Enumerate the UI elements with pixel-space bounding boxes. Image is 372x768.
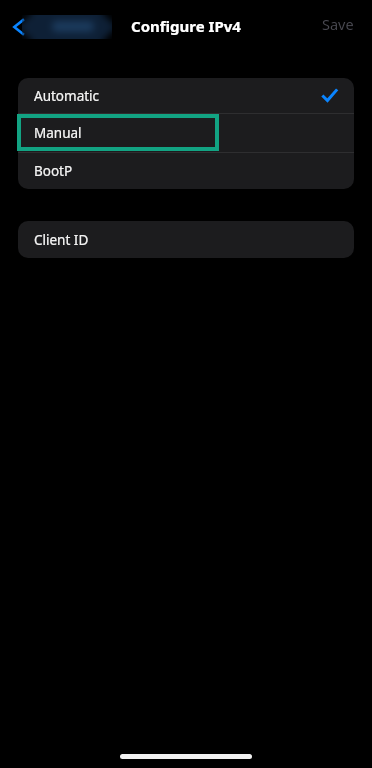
button[interactable]: BootP	[18, 153, 354, 189]
staticText: Automatic	[34, 87, 100, 105]
button[interactable]: Automatic	[18, 78, 354, 113]
button[interactable]: Manual	[18, 114, 354, 152]
staticText: Save	[322, 14, 354, 34]
staticText: Manual	[34, 124, 82, 142]
button[interactable]: Save	[314, 8, 362, 40]
staticText: Configure IPv4	[0, 16, 372, 36]
staticText: BootP	[34, 162, 73, 180]
button[interactable]: Back	[2, 10, 36, 44]
staticText: Client ID	[34, 231, 89, 249]
button[interactable]: Client ID	[18, 221, 354, 258]
